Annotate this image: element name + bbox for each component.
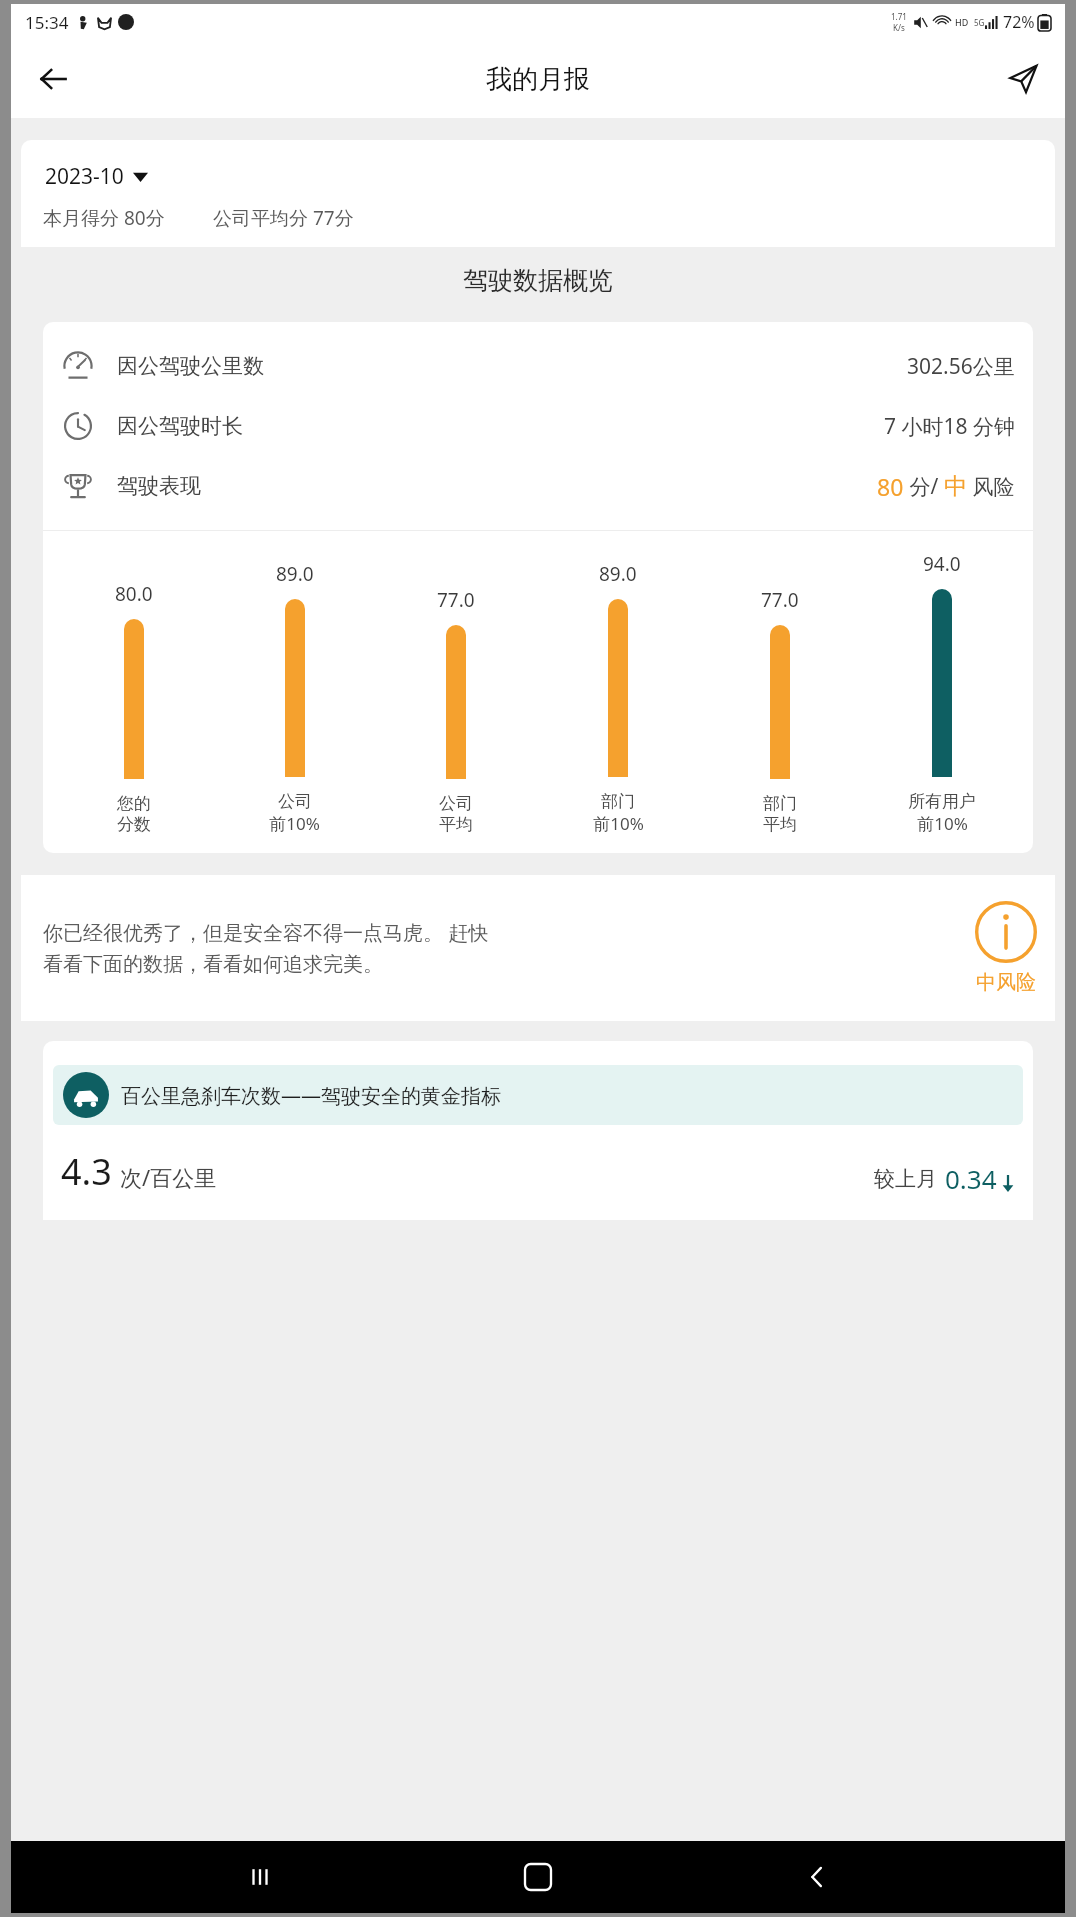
staticText: 中风险: [976, 970, 1036, 995]
staticText: HD: [955, 16, 969, 28]
staticText: 80: [877, 471, 904, 502]
staticText: 部门: [763, 793, 797, 814]
staticText: 平均: [763, 814, 797, 835]
button[interactable]: Share: [995, 51, 1051, 107]
button[interactable]: Recents: [230, 1847, 290, 1907]
staticText: 302.56公里: [907, 352, 1015, 381]
staticText: 分/: [904, 472, 944, 501]
staticText: 5G: [974, 17, 985, 28]
staticText: 15:34: [25, 11, 69, 34]
staticText: 风险: [967, 472, 1015, 501]
staticText: 所有用户: [908, 791, 976, 812]
staticText: 0.34: [945, 1161, 997, 1196]
staticText: 您的: [117, 793, 151, 814]
button[interactable]: Back: [25, 51, 81, 107]
staticText: 89.0: [599, 561, 637, 587]
staticText: 7 小时18 分钟: [884, 412, 1015, 441]
staticText: 72%: [1003, 11, 1035, 33]
staticText: 89.0: [276, 561, 314, 587]
staticText: 百公里急刹车次数——驾驶安全的黄金指标: [121, 1082, 501, 1109]
button[interactable]: 因公驾驶时长: [43, 396, 1033, 456]
staticText: 77.0: [437, 587, 475, 613]
staticText: 部门: [601, 791, 635, 812]
staticText: 公司: [278, 791, 312, 812]
staticText: 较上月: [874, 1166, 937, 1192]
button[interactable]: 驾驶表现: [43, 456, 1033, 516]
staticText: 我的月报: [486, 63, 590, 96]
button[interactable]: Home: [508, 1847, 568, 1907]
staticText: 因公驾驶公里数: [117, 353, 264, 379]
staticText: 次/百公里: [120, 1162, 217, 1192]
staticText: 公司: [439, 793, 473, 814]
button[interactable]: 因公驾驶公里数: [43, 336, 1033, 396]
staticText: 你已经很优秀了，但是安全容不得一点马虎。 赶快: [43, 919, 489, 946]
staticText: 前10%: [917, 812, 968, 835]
button[interactable]: Back: [787, 1847, 847, 1907]
staticText: K/s: [893, 22, 905, 33]
staticText: 1.71: [891, 11, 907, 22]
staticText: 因公驾驶时长: [117, 413, 243, 439]
staticText: 驾驶表现: [117, 473, 201, 499]
staticText: 中: [944, 472, 967, 501]
staticText: 80.0: [115, 581, 153, 607]
staticText: 分数: [117, 814, 151, 835]
staticText: 77.0: [761, 587, 799, 613]
button[interactable]: 2023-10: [43, 160, 150, 193]
staticText: 2023-10: [45, 162, 124, 191]
staticText: 驾驶数据概览: [21, 265, 1055, 296]
staticText: 94.0: [923, 551, 961, 577]
staticText: 平均: [439, 814, 473, 835]
staticText: 4.3: [61, 1147, 112, 1196]
staticText: 前10%: [593, 812, 644, 835]
staticText: 公司平均分 77分: [213, 205, 354, 231]
staticText: 看看下面的数据，看看如何追求完美。: [43, 952, 383, 977]
staticText: 本月得分 80分: [43, 205, 165, 231]
staticText: 前10%: [269, 812, 320, 835]
